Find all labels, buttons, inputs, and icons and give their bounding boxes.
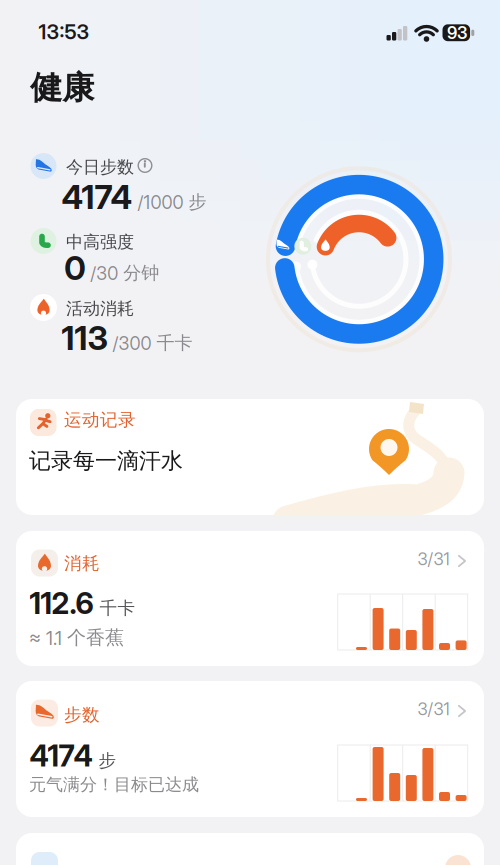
staticText: 112.6 xyxy=(29,585,93,621)
staticText: 消耗 xyxy=(64,552,100,574)
staticText: 3/31 xyxy=(417,549,449,569)
staticText: 运动记录 xyxy=(64,409,136,431)
staticText: 93 xyxy=(447,22,467,43)
button[interactable]: 步数说明 xyxy=(137,157,153,173)
staticText: 4174 xyxy=(29,738,92,774)
staticText: 0 xyxy=(64,248,85,288)
staticText: 今日步数 xyxy=(66,156,134,178)
staticText: 中高强度 xyxy=(66,231,134,253)
staticText: 4174 xyxy=(61,177,132,217)
staticText: 千卡 xyxy=(99,597,135,619)
staticText: 步数 xyxy=(64,704,100,726)
button[interactable]: 步数 xyxy=(16,681,484,817)
button[interactable]: 运动记录 xyxy=(16,399,484,515)
staticText: /30 分钟 xyxy=(90,262,159,284)
staticText: 健康 xyxy=(30,68,94,108)
staticText: 13:53 xyxy=(38,19,89,44)
staticText: 记录每一滴汗水 xyxy=(29,447,183,475)
staticText: 元气满分！目标已达成 xyxy=(29,774,199,795)
staticText: 步 xyxy=(98,750,116,772)
staticText: 活动消耗 xyxy=(66,298,134,319)
staticText: 3/31 xyxy=(417,699,449,719)
staticText: 113 xyxy=(61,318,107,358)
button[interactable]: 消耗 xyxy=(16,531,484,666)
button[interactable]: 睡眠 xyxy=(16,833,484,865)
staticText: ≈ 1.1 个香蕉 xyxy=(29,626,124,650)
staticText: /300 千卡 xyxy=(112,332,192,354)
staticText: /1000 步 xyxy=(137,191,206,213)
